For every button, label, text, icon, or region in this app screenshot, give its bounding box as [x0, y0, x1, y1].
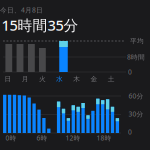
staticText: 平均 [130, 37, 144, 45]
staticText: 12時 [65, 134, 80, 142]
staticText: 30分 [128, 110, 143, 118]
staticText: 金 [90, 75, 97, 83]
staticText: 土 [108, 75, 115, 83]
staticText: 月 [22, 75, 29, 83]
staticText: 0 [128, 128, 132, 136]
staticText: 水 [56, 75, 63, 83]
staticText: 火 [39, 75, 46, 83]
staticText: 60分 [128, 92, 143, 100]
staticText: 18時 [96, 134, 111, 142]
staticText: 0 [128, 68, 132, 76]
staticText: 8時間 [127, 53, 145, 61]
staticText: 木 [73, 75, 80, 83]
staticText: 15時間35分 [1, 15, 78, 35]
staticText: 6時 [36, 134, 47, 142]
staticText: 0時 [5, 134, 16, 142]
staticText: 今日、4月8日 [0, 6, 43, 14]
staticText: 日 [4, 75, 11, 83]
